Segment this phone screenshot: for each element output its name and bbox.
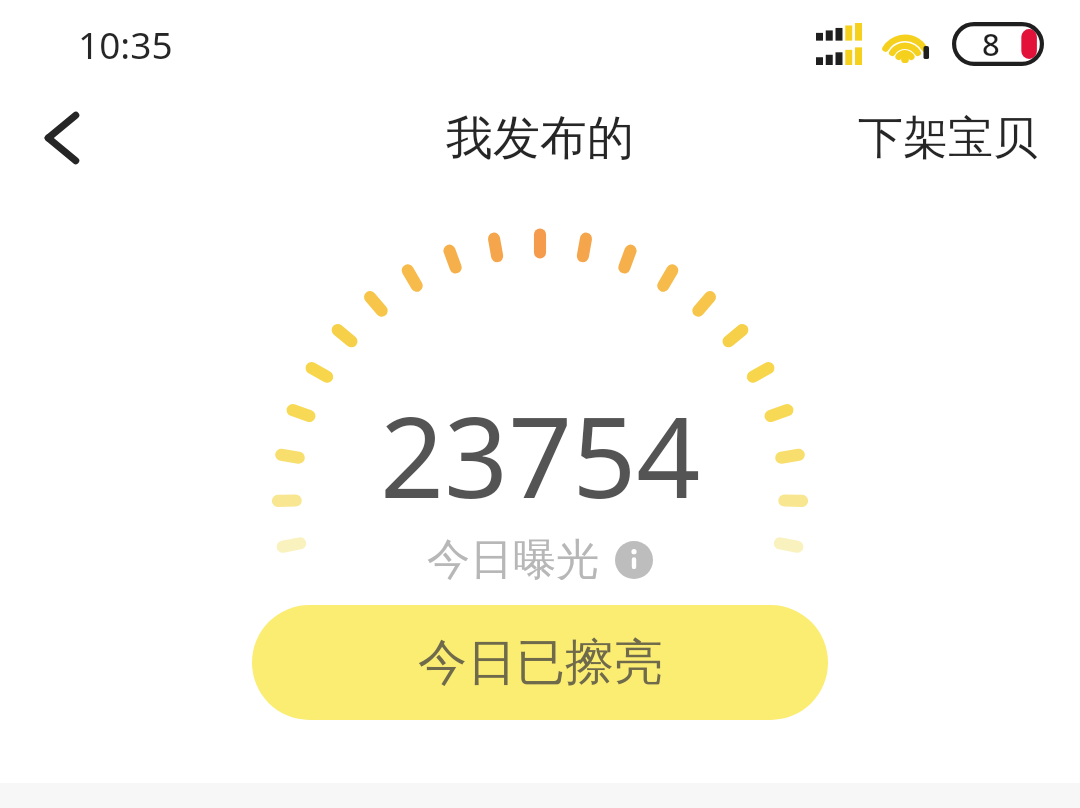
- staticText: 我发布的: [446, 109, 634, 168]
- staticText: 今日已擦亮: [418, 632, 663, 694]
- staticText: 23754: [380, 378, 701, 531]
- button[interactable]: Back: [22, 98, 102, 178]
- staticText: 下架宝贝: [858, 110, 1038, 167]
- staticText: 今日曝光: [427, 533, 599, 587]
- staticText: 8: [982, 23, 1000, 65]
- button[interactable]: Info: [615, 541, 653, 579]
- button[interactable]: 今日已擦亮: [252, 605, 828, 720]
- button[interactable]: 下架宝贝: [850, 100, 1046, 177]
- staticText: 10:35: [78, 19, 173, 69]
